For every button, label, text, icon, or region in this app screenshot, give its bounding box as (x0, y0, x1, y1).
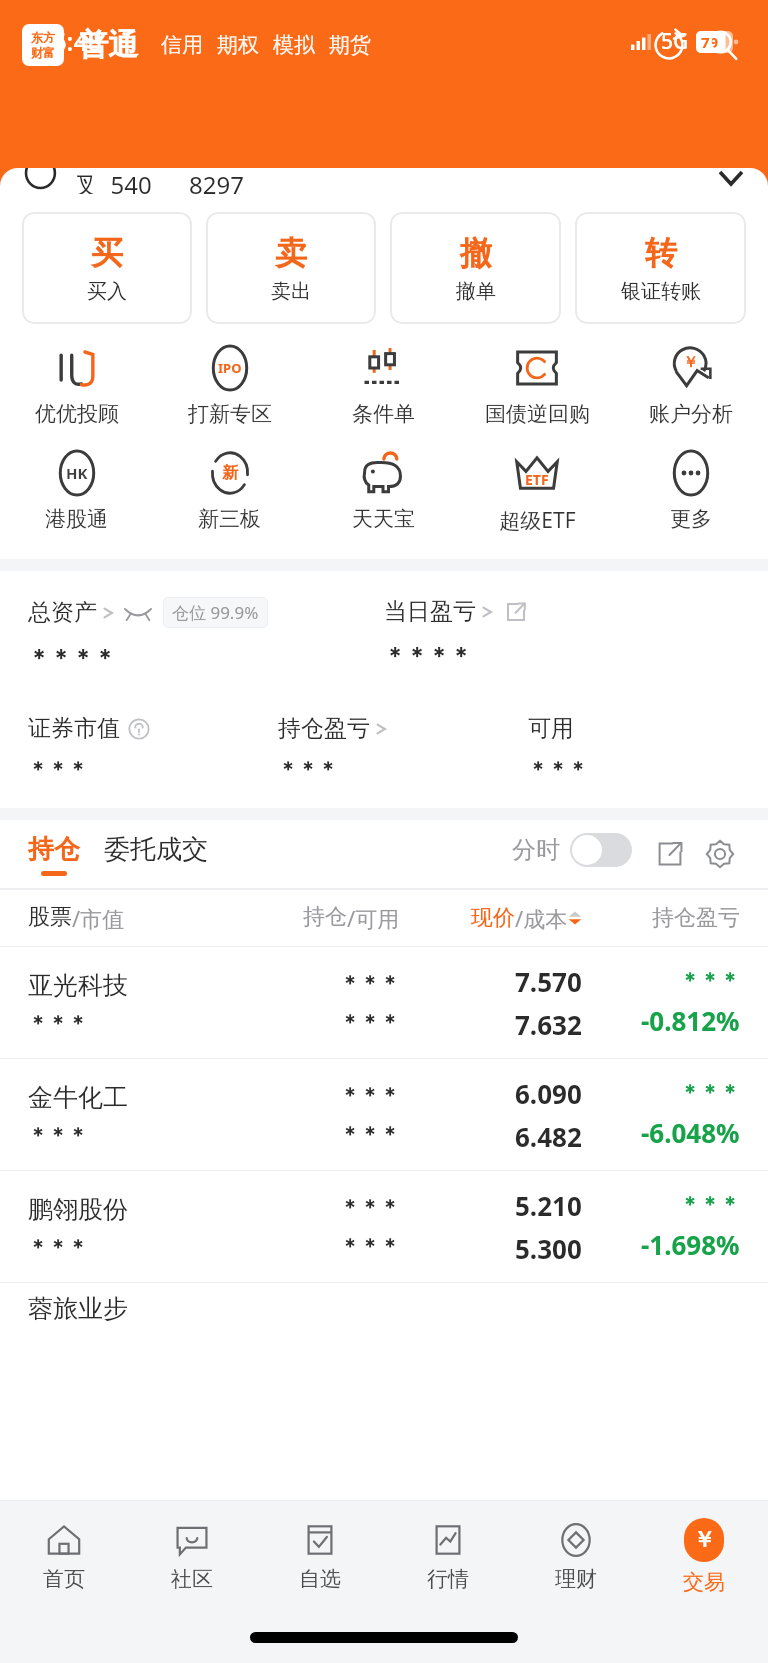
button[interactable]: 模拟 (266, 32, 322, 58)
button[interactable]: 新 (153, 447, 306, 534)
button[interactable]: 更多 (614, 447, 768, 534)
staticText: /市值 (72, 903, 125, 933)
staticText: ＊＊＊＊ (28, 644, 116, 672)
staticText: 撤单 (456, 279, 496, 304)
button[interactable]: 期货 (322, 32, 378, 58)
staticText: 转 (645, 233, 677, 273)
button[interactable]: ￥ (640, 1518, 768, 1595)
button[interactable]: 期权 (210, 32, 266, 58)
button[interactable]: 转 (575, 212, 746, 324)
staticText: ￥ (693, 1526, 715, 1554)
button[interactable]: ￥ (614, 342, 768, 429)
button[interactable]: 理财 (512, 1521, 640, 1592)
button[interactable]: 撤 (390, 212, 561, 324)
button[interactable]: 买 (22, 212, 192, 324)
staticText: ETF (525, 470, 549, 489)
staticText: 国债逆回购 (485, 401, 590, 427)
staticText: ＊＊＊ (28, 757, 88, 782)
staticText: 新三板 (198, 506, 261, 532)
staticText: 金牛化工 (28, 1082, 128, 1113)
staticText: ＊＊＊ (528, 757, 588, 782)
staticText: 鹏翎股份 (28, 1194, 128, 1225)
staticText: -6.048% (641, 1115, 740, 1150)
button[interactable]: IPO (153, 342, 306, 429)
staticText: 超级ETF (499, 506, 576, 535)
staticText: 天天宝 (352, 506, 415, 532)
staticText: 社区 (171, 1566, 213, 1592)
button[interactable]: 委托成交 (104, 833, 208, 876)
staticText: 首页 (43, 1566, 85, 1592)
button[interactable]: 条件单 (306, 342, 460, 429)
button[interactable]: 金牛化工 (0, 1058, 768, 1170)
button[interactable]: ETF (460, 447, 614, 537)
button[interactable]: Expand (650, 834, 690, 874)
staticText: /可用 (347, 903, 400, 933)
staticText: ＊＊＊ (340, 1010, 400, 1035)
button[interactable]: 持仓 (28, 833, 80, 876)
staticText: 仓位 99.9% (172, 601, 259, 624)
staticText: ＊＊＊ (680, 1192, 740, 1217)
staticText: 蓉旅业步 (28, 1293, 128, 1324)
button[interactable]: 持仓盈亏 (278, 714, 388, 743)
button[interactable]: 天天宝 (306, 447, 460, 534)
staticText: ＊＊＊ (680, 968, 740, 993)
staticText: ＊＊＊ (340, 1234, 400, 1259)
staticText: 可用 (528, 714, 574, 743)
staticText: 16:48 (38, 24, 103, 58)
staticText: 行情 (427, 1566, 469, 1592)
staticText: 7.570 (515, 964, 582, 999)
staticText: 账户分析 (649, 401, 733, 427)
button[interactable]: 分时 (512, 833, 632, 875)
staticText: /成本 (515, 903, 568, 933)
button[interactable]: 国债逆回购 (460, 342, 614, 429)
staticText: ＊＊＊ (28, 1235, 88, 1260)
button[interactable]: 行情 (384, 1521, 512, 1592)
staticText: ＊＊＊ (278, 757, 338, 782)
staticText: 总资产 (28, 598, 97, 627)
button[interactable]: 普通 (78, 26, 138, 64)
button[interactable]: 优优投顾 (0, 342, 153, 429)
button[interactable]: 卖 (206, 212, 376, 324)
staticText: 理财 (555, 1566, 597, 1592)
staticText: ＊＊＊ (680, 1080, 740, 1105)
staticText: 买入 (87, 279, 127, 304)
staticText: 更多 (670, 506, 712, 532)
staticText: 现价 (471, 904, 515, 932)
staticText: 5G (661, 27, 689, 56)
staticText: 亚光科技 (28, 970, 128, 1001)
button[interactable]: Settings (700, 834, 740, 874)
staticText: 7.632 (515, 1007, 582, 1042)
button[interactable]: 亚光科技 (0, 946, 768, 1058)
staticText: 当日盈亏 (384, 597, 476, 626)
button[interactable]: 当日盈亏 (384, 597, 526, 626)
button[interactable]: 自选 (256, 1521, 384, 1592)
staticText: 新 (222, 463, 238, 483)
button[interactable]: HK (0, 447, 153, 534)
button[interactable]: Search (700, 22, 746, 68)
staticText: ￥ (683, 353, 698, 372)
staticText: 5.210 (515, 1188, 582, 1223)
other: Help (128, 718, 150, 740)
staticText: ＊＊＊ (340, 1195, 400, 1220)
staticText: 条件单 (352, 401, 415, 427)
staticText: ＊＊＊＊ (384, 642, 472, 670)
button[interactable]: 首页 (0, 1521, 128, 1592)
staticText: 卖出 (271, 279, 311, 304)
button[interactable]: 鹏翎股份 (0, 1170, 768, 1282)
staticText: 打新专区 (188, 401, 272, 427)
button[interactable]: 信用 (154, 32, 210, 58)
staticText: -0.812% (641, 1003, 740, 1038)
staticText: 6.090 (515, 1076, 582, 1111)
staticText: 持仓盈亏 (278, 714, 370, 743)
button[interactable]: Refresh (646, 22, 692, 68)
staticText: HK (66, 463, 88, 483)
button[interactable]: 社区 (128, 1521, 256, 1592)
staticText: 5.300 (515, 1231, 582, 1266)
staticText: -1.698% (641, 1227, 740, 1262)
button[interactable]: 东方 (22, 24, 64, 66)
staticText: 持仓盈亏 (652, 904, 740, 932)
button[interactable]: 总资产 (28, 597, 268, 628)
staticText: 财富 (31, 45, 55, 60)
staticText: 79 (701, 32, 719, 52)
staticText: 港股通 (45, 506, 108, 532)
